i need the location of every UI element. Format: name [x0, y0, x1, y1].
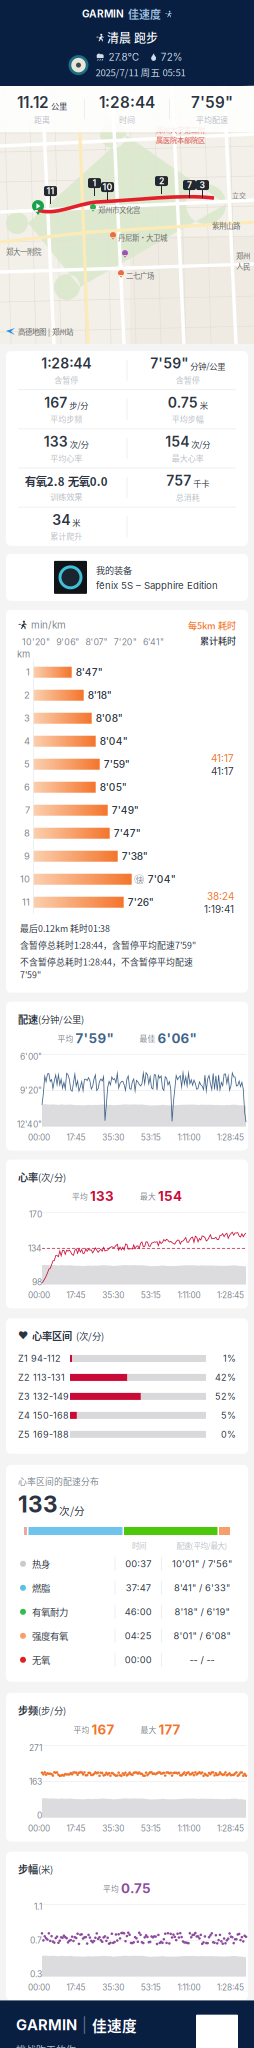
staticText: 35:30	[102, 1982, 124, 1992]
staticText: (步/分)	[38, 1703, 66, 1717]
staticText: 8'01" / 6'08"	[173, 1630, 230, 1641]
staticText: 累计爬升	[50, 530, 82, 542]
staticText: 8	[24, 828, 30, 839]
staticText: 11.12	[17, 93, 49, 112]
staticText: 分钟/公里	[190, 360, 225, 372]
staticText: 00:00	[125, 1654, 152, 1665]
staticText: 7'49"	[112, 804, 139, 816]
staticText: 0	[37, 1810, 42, 1821]
staticText: 27.8℃	[108, 51, 139, 63]
staticText: 04:25	[125, 1630, 152, 1641]
staticText: 12'40"	[17, 1119, 42, 1129]
staticText: 平均	[57, 1033, 73, 1044]
staticText: fēnix 5S – Sapphire Edition	[96, 580, 218, 591]
staticText: 含暂停总耗时1:28:44，含暂停平均配速7'59"	[20, 938, 196, 951]
staticText: 5%	[221, 1410, 236, 1421]
staticText: 不含暂停总耗时1:28:44，不含暂停平均配速 7'59"	[20, 955, 193, 981]
staticText: 配速(平均/最大)	[176, 1540, 227, 1551]
staticText: 郑州市文化宫	[98, 204, 140, 215]
staticText: 公里	[51, 100, 67, 112]
staticText: 每5km 耗时	[188, 619, 236, 632]
staticText: 1%	[223, 1353, 236, 1364]
staticText: 0%	[221, 1429, 236, 1440]
staticText: 1:11:00	[177, 1290, 200, 1300]
staticText: 千卡	[193, 477, 209, 489]
staticText: 热身	[32, 1557, 50, 1570]
staticText: (分钟/公里)	[38, 1012, 84, 1026]
staticText: 1:28:45	[217, 1132, 244, 1142]
staticText: 平均步幅	[172, 413, 204, 425]
staticText: 平均步频	[50, 413, 82, 425]
staticText: 8'08"	[96, 712, 123, 724]
staticText: (米)	[38, 1862, 53, 1876]
staticText: GARMIN	[16, 2016, 77, 2034]
staticText: 98	[32, 1277, 42, 1287]
staticText: (次/分)	[38, 1170, 66, 1184]
staticText: 最大	[140, 1724, 156, 1735]
staticText: 平均配速	[196, 114, 228, 125]
staticText: 郑州大学第二附 属医院本部院区	[156, 124, 205, 145]
staticText: 53:15	[141, 1824, 161, 1834]
staticText: 心率	[18, 1169, 38, 1184]
staticText: 35:30	[102, 1824, 124, 1834]
staticText: 挑战昨天的你	[16, 2043, 76, 2048]
staticText: 00:00	[28, 1982, 50, 1992]
staticText: 时间	[119, 114, 135, 125]
staticText: |	[82, 2016, 87, 2034]
staticText: 平均	[72, 1191, 88, 1202]
staticText: 立交	[232, 190, 246, 200]
staticText: 步频	[18, 1703, 38, 1717]
staticText: 时间	[132, 1540, 146, 1551]
staticText: 0.3	[30, 1969, 42, 1979]
staticText: 2	[159, 176, 164, 186]
staticText: 37:47	[126, 1582, 151, 1593]
staticText: 53:15	[141, 1290, 161, 1300]
staticText: 1:11:00	[177, 1824, 200, 1834]
staticText: 郑州 人民	[236, 250, 250, 272]
staticText: Z5 169-188	[18, 1429, 69, 1440]
staticText: 1:19:41	[204, 903, 234, 915]
staticText: 次/分	[70, 438, 89, 450]
staticText: 35:30	[102, 1132, 124, 1142]
staticText: 1:28:45	[217, 1982, 244, 1992]
staticText: 7'59"	[104, 758, 130, 770]
staticText: 8'47"	[76, 666, 103, 678]
staticText: 6	[24, 782, 30, 793]
staticText: 8'04"	[100, 735, 128, 747]
staticText: 7	[25, 805, 30, 816]
staticText: 7'26"	[128, 896, 154, 908]
staticText: 高德地图 | 郑州站	[18, 326, 73, 337]
staticText: 10'20"	[22, 637, 50, 647]
staticText: 00:00	[28, 1290, 50, 1300]
staticText: 163	[29, 1776, 42, 1787]
staticText: 00:00	[28, 1824, 50, 1834]
staticText: 1	[92, 178, 96, 188]
staticText: 强度有氧	[32, 1629, 68, 1642]
staticText: 3	[199, 180, 205, 190]
staticText: 次/分	[59, 1502, 85, 1518]
staticText: 紫荆山路	[212, 220, 240, 231]
staticText: 271	[29, 1743, 42, 1753]
staticText: 757	[166, 472, 191, 489]
staticText: 最佳	[139, 1033, 155, 1044]
staticText: 总消耗	[176, 491, 200, 503]
staticText: 燃脂	[32, 1581, 50, 1594]
staticText: Z3 132-149	[18, 1391, 69, 1402]
staticText: 心率区间	[32, 1328, 72, 1343]
staticText: 17:45	[67, 1132, 86, 1142]
staticText: 2	[24, 690, 30, 701]
staticText: 17:45	[67, 1982, 86, 1992]
button[interactable]: 我的装备	[6, 554, 248, 601]
staticText: 177	[158, 1721, 180, 1738]
staticText: 7'47"	[114, 827, 141, 839]
staticText: 二七广场	[126, 270, 154, 281]
staticText: 133	[44, 433, 68, 450]
staticText: 52%	[215, 1391, 236, 1402]
staticText: 53:15	[141, 1982, 161, 1992]
staticText: 34	[52, 511, 70, 528]
staticText: 35:30	[102, 1290, 124, 1300]
staticText: 步/分	[69, 399, 88, 411]
staticText: 8'07"	[85, 637, 107, 647]
staticText: 8'05"	[100, 781, 127, 793]
staticText: 6'00"	[20, 1051, 42, 1062]
